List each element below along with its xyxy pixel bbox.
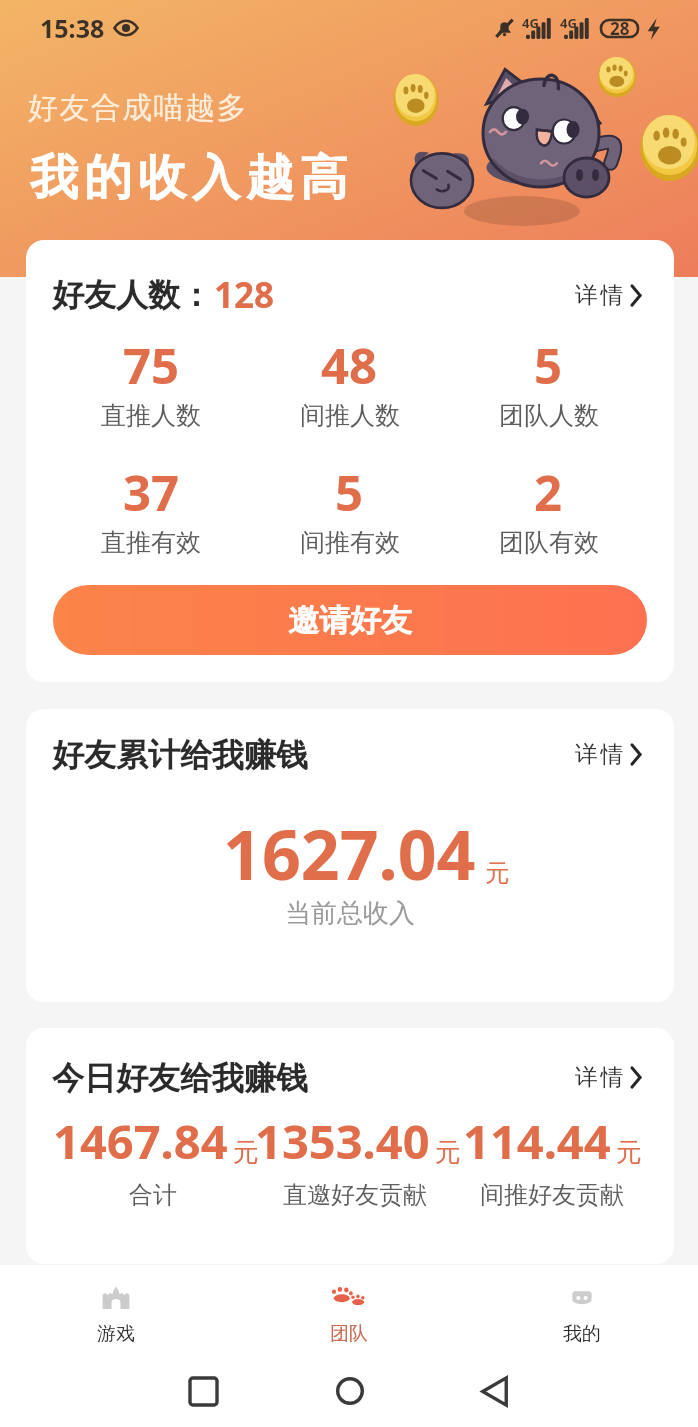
staticText: 间推有效 (300, 527, 400, 558)
staticText: 5 (335, 459, 364, 526)
staticText: 1627.04 (223, 807, 476, 900)
staticText: 间推好友贡献 (480, 1180, 624, 1210)
staticText: 间推人数 (300, 400, 400, 431)
button[interactable]: 团队 (232, 1265, 465, 1346)
staticText: 我的 (563, 1322, 601, 1346)
staticText: 团队人数 (499, 400, 599, 431)
staticText: 详情 (575, 740, 627, 769)
button[interactable]: 详情 (567, 273, 646, 318)
staticText: 团队有效 (499, 527, 599, 558)
staticText: 4G (522, 14, 539, 32)
staticText: 游戏 (97, 1322, 135, 1346)
staticText: 详情 (575, 1063, 627, 1092)
staticText: 128 (214, 271, 275, 319)
button[interactable]: 详情 (567, 732, 646, 777)
staticText: 37 (123, 459, 180, 526)
button[interactable]: Recents (173, 1361, 233, 1421)
button[interactable]: Back (464, 1361, 524, 1421)
staticText: 我的收入越高 (27, 148, 351, 208)
staticText: 团队 (330, 1322, 368, 1346)
staticText: 直邀好友贡献 (283, 1180, 427, 1210)
staticText: 1467.84 (53, 1109, 228, 1173)
button[interactable]: 游戏 (0, 1265, 232, 1346)
staticText: 元 (435, 1136, 455, 1169)
staticText: 4G (560, 14, 577, 32)
staticText: 直推有效 (101, 527, 201, 558)
staticText: 2 (534, 459, 563, 526)
staticText: 详情 (575, 281, 627, 310)
staticText: 元 (616, 1136, 642, 1169)
button[interactable]: 我的 (465, 1265, 698, 1346)
staticText: 48 (321, 332, 378, 399)
staticText: 好友合成喵越多 (28, 89, 248, 127)
staticText: 当前总收入 (26, 897, 674, 930)
staticText: 好友人数： (52, 275, 212, 315)
staticText: 114.44 (463, 1109, 611, 1173)
staticText: 15:38 (40, 11, 105, 45)
staticText: 元 (485, 858, 509, 888)
staticText: 邀请好友 (288, 601, 412, 640)
staticText: 今日好友给我赚钱 (52, 1058, 308, 1098)
button[interactable]: Home (320, 1361, 380, 1421)
staticText: 直推人数 (101, 400, 201, 431)
button[interactable]: 邀请好友 (53, 585, 647, 655)
staticText: 75 (123, 332, 180, 399)
staticText: 28 (610, 17, 630, 40)
staticText: 好友累计给我赚钱 (52, 735, 308, 775)
staticText: 1353.40 (255, 1109, 430, 1173)
staticText: 5 (534, 332, 563, 399)
button[interactable]: 详情 (567, 1055, 646, 1100)
staticText: 元 (233, 1136, 253, 1169)
staticText: 合计 (129, 1180, 177, 1210)
